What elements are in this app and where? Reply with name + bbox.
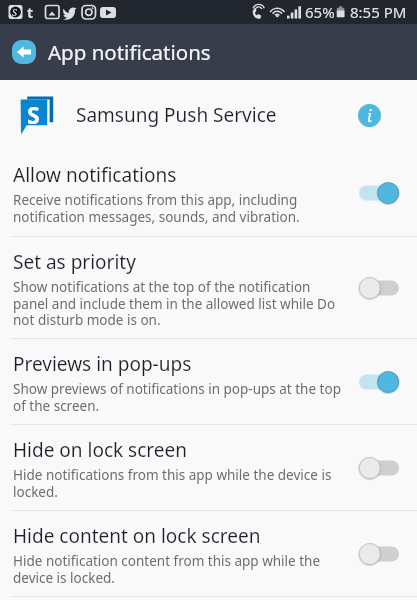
button[interactable]: App info <box>358 104 381 127</box>
staticText: Hide on lock screen <box>13 437 187 463</box>
staticText: i <box>367 105 372 127</box>
staticText: 8:55 PM <box>350 2 407 22</box>
button[interactable]: Switch on <box>359 181 399 205</box>
staticText: S <box>12 6 17 18</box>
staticText: Samsung Push Service <box>76 102 277 128</box>
staticText: App notifications <box>48 38 211 66</box>
button[interactable]: Switch off <box>359 456 399 480</box>
button[interactable]: Switch off <box>359 542 399 566</box>
button[interactable]: Allow notifications <box>0 150 417 236</box>
staticText: Receive notifications from this app, inc… <box>13 191 347 226</box>
staticText: Hide content on lock screen <box>13 523 261 549</box>
staticText: Show notifications at the top of the not… <box>13 278 347 329</box>
button[interactable]: Hide content on lock screen <box>0 511 417 596</box>
button[interactable]: Hide on lock screen <box>0 425 417 510</box>
staticText: 65% <box>305 2 335 22</box>
staticText: S <box>27 99 40 130</box>
button[interactable]: Switch on <box>359 370 399 394</box>
button[interactable]: Switch off <box>359 276 399 300</box>
staticText: Show previews of notifications in pop-up… <box>13 380 347 415</box>
button[interactable]: Navigate up <box>12 40 36 64</box>
staticText: Allow notifications <box>13 162 177 188</box>
button[interactable]: Previews in pop-ups <box>0 339 417 424</box>
staticText: t <box>27 3 34 22</box>
staticText: Set as priority <box>13 249 136 275</box>
staticText: Hide notifications from this app while t… <box>13 466 347 501</box>
staticText: Previews in pop-ups <box>13 351 192 377</box>
button[interactable]: Set as priority <box>0 237 417 338</box>
staticText: Hide notification content from this app … <box>13 552 347 587</box>
